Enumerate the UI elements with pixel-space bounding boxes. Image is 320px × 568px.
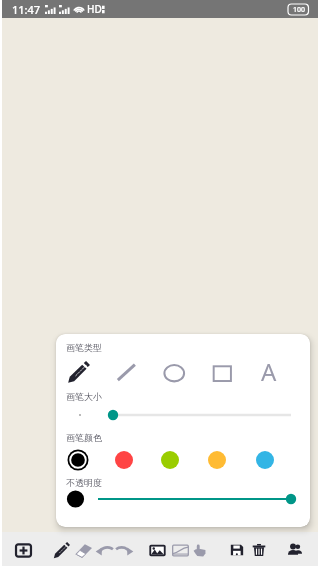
button[interactable]: Text tool [253, 356, 285, 388]
staticText: A [261, 355, 277, 387]
button[interactable]: Brush size [56, 404, 310, 426]
staticText: 11:47 [12, 2, 41, 17]
button[interactable]: Blue [252, 447, 278, 473]
button[interactable]: Yellow [204, 447, 230, 473]
button[interactable]: Rectangle tool [205, 356, 237, 388]
button[interactable]: Collaborators [282, 538, 306, 562]
button[interactable]: Circle tool [158, 356, 190, 388]
button[interactable]: Eraser [71, 538, 95, 562]
staticText: HD [87, 2, 102, 16]
button[interactable]: Pan [188, 538, 212, 562]
button[interactable]: Delete [247, 538, 271, 562]
button[interactable]: Opacity [56, 487, 310, 511]
button[interactable]: Add frame [11, 538, 35, 562]
staticText: 100 [293, 5, 306, 15]
button[interactable]: Line tool [110, 356, 142, 388]
button[interactable]: Save [225, 538, 249, 562]
button[interactable]: Green [157, 447, 183, 473]
button[interactable]: Pencil brush [62, 356, 94, 388]
staticText: 画笔颜色 [66, 432, 102, 443]
staticText: 不透明度 [66, 477, 102, 488]
button[interactable]: Insert image [145, 538, 169, 562]
button[interactable]: Brush [49, 538, 73, 562]
staticText: 画笔类型 [66, 342, 102, 353]
button[interactable]: Undo [92, 538, 116, 562]
button[interactable]: Redo [113, 538, 137, 562]
button[interactable]: Red [111, 447, 137, 473]
staticText: 画笔大小 [66, 391, 102, 402]
button[interactable]: Background [168, 538, 192, 562]
button[interactable]: Black [65, 447, 91, 473]
